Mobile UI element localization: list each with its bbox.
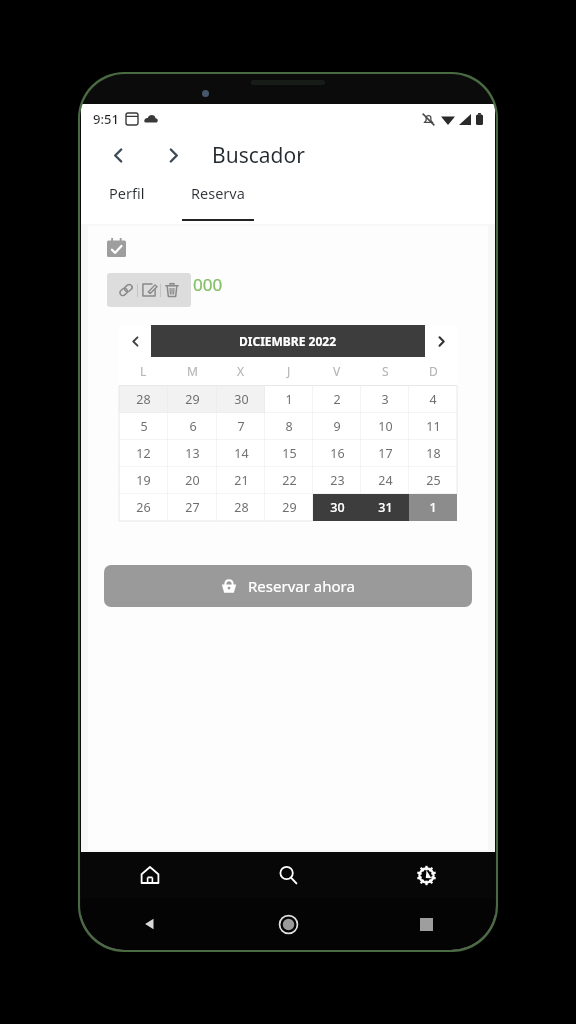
button[interactable]: 29	[265, 494, 313, 521]
button[interactable]: 25	[409, 467, 457, 494]
button[interactable]: Delete	[161, 279, 183, 301]
staticText: 5	[140, 418, 148, 435]
staticText: M	[187, 363, 198, 379]
staticText: L	[140, 363, 147, 379]
button[interactable]: Edit	[138, 279, 160, 301]
staticText: X	[237, 363, 245, 379]
staticText: 15	[282, 445, 297, 462]
staticText: 6	[189, 418, 197, 435]
staticText: 28	[136, 391, 151, 408]
button[interactable]: Home	[219, 898, 357, 950]
button[interactable]: 24	[361, 467, 409, 494]
button[interactable]: 6	[168, 413, 217, 440]
button[interactable]: 30	[313, 494, 361, 521]
button[interactable]: 12	[119, 440, 168, 467]
staticText: 2	[333, 391, 341, 408]
button[interactable]: 10	[361, 413, 409, 440]
button[interactable]: Home	[81, 852, 219, 898]
button[interactable]: 28	[217, 494, 265, 521]
staticText: 12	[136, 445, 151, 462]
button[interactable]: 26	[119, 494, 168, 521]
button[interactable]: 11	[409, 413, 457, 440]
button[interactable]: Back	[81, 898, 219, 950]
staticText: 21	[234, 472, 249, 489]
button[interactable]: 31	[361, 494, 409, 521]
staticText: 1	[285, 391, 293, 408]
staticText: 29	[185, 391, 200, 408]
button[interactable]: Perfil	[95, 176, 159, 210]
staticText: 27	[185, 499, 200, 516]
staticText: 18	[426, 445, 441, 462]
button[interactable]: 23	[313, 467, 361, 494]
staticText: 10	[378, 418, 393, 435]
staticText: 17	[378, 445, 393, 462]
staticText: D	[429, 363, 438, 379]
staticText: Buscador	[212, 141, 305, 170]
button[interactable]: 28	[119, 386, 168, 413]
staticText: V	[333, 363, 341, 379]
staticText: 9:51	[93, 110, 119, 128]
button[interactable]: 1	[265, 386, 313, 413]
staticText: Reserva	[191, 183, 245, 203]
button[interactable]: Back	[103, 140, 133, 170]
button[interactable]: 30	[217, 386, 265, 413]
staticText: 22	[282, 472, 297, 489]
staticText: 000	[193, 273, 223, 296]
staticText: 26	[136, 499, 151, 516]
staticText: 14	[234, 445, 249, 462]
staticText: Perfil	[109, 183, 145, 203]
button[interactable]: 15	[265, 440, 313, 467]
staticText: 4	[429, 391, 437, 408]
button[interactable]: 29	[168, 386, 217, 413]
button[interactable]: 17	[361, 440, 409, 467]
button[interactable]: 14	[217, 440, 265, 467]
button[interactable]: 27	[168, 494, 217, 521]
staticText: J	[287, 363, 291, 379]
button[interactable]: Next month	[425, 325, 457, 357]
button[interactable]: 16	[313, 440, 361, 467]
button[interactable]: 19	[119, 467, 168, 494]
button[interactable]: 8	[265, 413, 313, 440]
button[interactable]: Settings	[357, 852, 495, 898]
staticText: 3	[381, 391, 389, 408]
button[interactable]: 1	[409, 494, 457, 521]
staticText: 30	[330, 499, 345, 516]
staticText: 29	[282, 499, 297, 516]
staticText: 16	[330, 445, 345, 462]
button[interactable]: 20	[168, 467, 217, 494]
staticText: 13	[185, 445, 200, 462]
staticText: 31	[378, 499, 393, 516]
button[interactable]: Link	[115, 279, 137, 301]
staticText: 19	[136, 472, 151, 489]
button[interactable]: 4	[409, 386, 457, 413]
button[interactable]: 22	[265, 467, 313, 494]
button[interactable]: 5	[119, 413, 168, 440]
staticText: DICIEMBRE 2022	[239, 333, 337, 349]
button[interactable]: Reservar ahora	[104, 565, 472, 607]
staticText: 30	[234, 391, 249, 408]
button[interactable]: Previous month	[119, 325, 151, 357]
staticText: 28	[234, 499, 249, 516]
staticText: S	[382, 363, 389, 379]
staticText: 1	[429, 499, 437, 516]
button[interactable]: Reserva	[177, 176, 259, 221]
button[interactable]: 7	[217, 413, 265, 440]
staticText: 20	[185, 472, 200, 489]
button[interactable]: Recents	[357, 898, 495, 950]
button[interactable]: 13	[168, 440, 217, 467]
staticText: 8	[285, 418, 293, 435]
staticText: 24	[378, 472, 393, 489]
button[interactable]: 18	[409, 440, 457, 467]
staticText: 23	[330, 472, 345, 489]
button[interactable]: Forward	[158, 140, 188, 170]
staticText: 25	[426, 472, 441, 489]
button[interactable]: Search	[219, 852, 357, 898]
button[interactable]: 9	[313, 413, 361, 440]
button[interactable]: 21	[217, 467, 265, 494]
button[interactable]: 2	[313, 386, 361, 413]
staticText: 11	[426, 418, 441, 435]
staticText: 7	[237, 418, 245, 435]
staticText: Reservar ahora	[248, 576, 355, 596]
staticText: 9	[333, 418, 341, 435]
button[interactable]: 3	[361, 386, 409, 413]
